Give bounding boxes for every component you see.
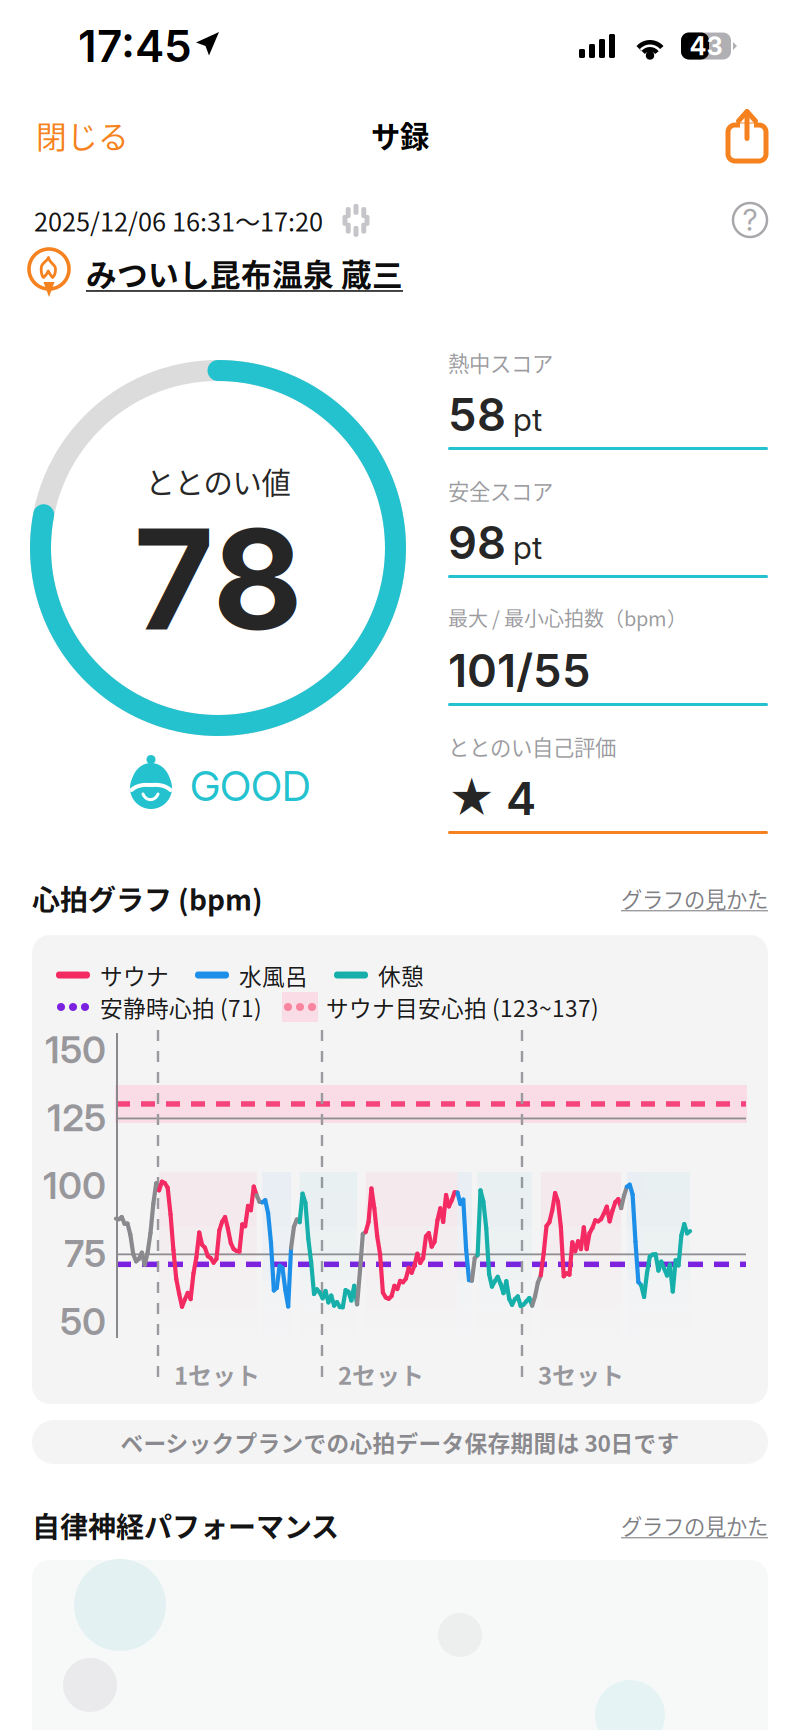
button[interactable]: グラフの見かた bbox=[621, 1510, 768, 1541]
staticText: 125 bbox=[47, 1095, 106, 1140]
button[interactable]: Help bbox=[728, 198, 772, 242]
staticText: ? bbox=[742, 202, 757, 238]
staticText: 最大 / 最小心拍数（bpm） bbox=[448, 603, 687, 632]
staticText: 閉じる bbox=[36, 113, 129, 157]
staticText: 1セット bbox=[174, 1357, 260, 1392]
staticText: 98 bbox=[448, 515, 506, 570]
staticText: 75 bbox=[64, 1231, 106, 1276]
staticText: グラフの見かた bbox=[621, 883, 768, 914]
staticText: ととのい自己評価 bbox=[448, 731, 616, 762]
staticText: 43 bbox=[689, 31, 722, 61]
staticText: 50 bbox=[60, 1299, 106, 1344]
staticText: みついし昆布温泉 蔵三 bbox=[86, 251, 403, 295]
staticText: 水風呂 bbox=[239, 959, 308, 991]
staticText: ととのい値 bbox=[145, 460, 290, 502]
staticText: 150 bbox=[45, 1027, 106, 1072]
staticText: グラフの見かた bbox=[621, 1510, 768, 1541]
button[interactable]: 閉じる bbox=[26, 103, 139, 167]
staticText: 休憩 bbox=[378, 959, 424, 991]
button[interactable]: グラフの見かた bbox=[621, 883, 768, 914]
button[interactable]: みついし昆布温泉 蔵三 bbox=[28, 248, 403, 298]
staticText: 101/55 bbox=[448, 643, 591, 698]
button[interactable]: Share bbox=[716, 103, 778, 167]
staticText: 3セット bbox=[538, 1357, 624, 1392]
staticText: 安全スコア bbox=[448, 475, 553, 506]
staticText: 2セット bbox=[338, 1357, 424, 1392]
staticText: 78 bbox=[133, 495, 302, 663]
staticText: 2025/12/06 16:31〜17:20 bbox=[34, 202, 323, 239]
staticText: pt bbox=[513, 528, 542, 567]
staticText: GOOD bbox=[190, 761, 311, 811]
staticText: ベーシックプランでの心拍データ保存期間は 30日です bbox=[120, 1426, 679, 1458]
staticText: 58 bbox=[448, 387, 506, 442]
staticText: サウナ目安心拍 (123~137) bbox=[326, 991, 599, 1023]
staticText: サ録 bbox=[371, 114, 429, 156]
staticText: 100 bbox=[43, 1163, 106, 1208]
staticText: 心拍グラフ (bpm) bbox=[32, 878, 263, 918]
staticText: 熱中スコア bbox=[448, 347, 553, 378]
staticText: 自律神経パフォーマンス bbox=[32, 1505, 339, 1545]
staticText: 安静時心拍 (71) bbox=[100, 991, 262, 1023]
staticText: 17:45 bbox=[78, 19, 192, 73]
staticText: pt bbox=[513, 400, 542, 439]
staticText: サウナ bbox=[100, 959, 169, 991]
staticText: ★ 4 bbox=[448, 771, 536, 826]
